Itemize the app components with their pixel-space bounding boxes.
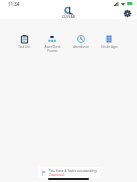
staticText: CLEVAR [62, 15, 76, 19]
button[interactable]: Task List [11, 35, 37, 49]
staticText: Attendance [73, 45, 89, 49]
button[interactable]: Asset Check Process [39, 35, 65, 53]
staticText: Asset Check Process [44, 45, 61, 53]
staticText: Onsite Apps [101, 45, 118, 49]
staticText: 11:34 [8, 1, 20, 7]
button[interactable]: You have 4 Tasks outstanding [38, 167, 100, 178]
staticText: You have 4 Tasks outstanding [49, 168, 97, 173]
button[interactable]: Attendance [68, 35, 94, 49]
button[interactable]: Settings [123, 9, 132, 18]
button[interactable]: Onsite Apps [96, 35, 122, 49]
staticText: Task List [18, 45, 30, 49]
staticText: Download [49, 173, 64, 177]
